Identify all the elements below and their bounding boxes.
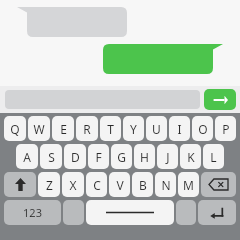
- button[interactable]: K: [180, 144, 201, 169]
- button[interactable]: Enter: [198, 200, 236, 225]
- button[interactable]: B: [132, 172, 153, 197]
- staticText: R: [83, 121, 91, 137]
- staticText: C: [93, 177, 101, 193]
- button[interactable]: [103, 44, 223, 74]
- button[interactable]: M: [178, 172, 199, 197]
- button[interactable]: T: [100, 116, 121, 141]
- staticText: A: [23, 149, 31, 165]
- staticText: Y: [130, 121, 137, 137]
- button[interactable]: Send: [204, 89, 236, 110]
- button[interactable]: Emoji: [63, 200, 84, 225]
- button[interactable]: H: [134, 144, 155, 169]
- staticText: D: [71, 149, 80, 165]
- button[interactable]: I: [169, 116, 190, 141]
- button[interactable]: R: [76, 116, 98, 141]
- button[interactable]: Shift: [4, 172, 36, 197]
- button[interactable]: 123: [4, 200, 61, 225]
- button[interactable]: S: [40, 144, 62, 169]
- staticText: G: [117, 149, 126, 165]
- staticText: P: [222, 121, 230, 137]
- staticText: K: [187, 149, 195, 165]
- button[interactable]: C: [86, 172, 107, 197]
- staticText: H: [140, 149, 149, 165]
- staticText: F: [95, 149, 102, 165]
- button[interactable]: A: [16, 144, 38, 169]
- button[interactable]: Backspace: [201, 172, 236, 197]
- button[interactable]: E: [52, 116, 74, 141]
- staticText: O: [198, 121, 208, 137]
- staticText: I: [177, 121, 182, 137]
- button[interactable]: [17, 7, 127, 37]
- staticText: M: [183, 177, 194, 193]
- button[interactable]: Q: [4, 116, 26, 141]
- staticText: T: [107, 121, 114, 137]
- staticText: B: [139, 177, 147, 193]
- button[interactable]: Space: [86, 200, 174, 225]
- staticText: J: [166, 149, 170, 165]
- button[interactable]: Y: [123, 116, 144, 141]
- button[interactable]: P: [215, 116, 236, 141]
- button[interactable]: V: [109, 172, 130, 197]
- button[interactable]: W: [28, 116, 50, 141]
- staticText: U: [152, 121, 161, 137]
- button[interactable]: N: [155, 172, 176, 197]
- staticText: E: [60, 121, 67, 137]
- staticText: L: [210, 149, 217, 165]
- staticText: V: [116, 177, 124, 193]
- button[interactable]: Language: [176, 200, 196, 225]
- staticText: X: [69, 177, 77, 193]
- button[interactable]: O: [192, 116, 213, 141]
- button[interactable]: D: [64, 144, 86, 169]
- staticText: N: [161, 177, 171, 193]
- button[interactable]: J: [157, 144, 178, 169]
- staticText: Q: [10, 121, 20, 137]
- staticText: W: [33, 121, 45, 137]
- staticText: 123: [23, 205, 42, 220]
- button[interactable]: X: [62, 172, 84, 197]
- button[interactable]: G: [111, 144, 132, 169]
- button[interactable]: L: [203, 144, 224, 169]
- staticText: Z: [46, 177, 53, 193]
- button[interactable]: F: [88, 144, 109, 169]
- staticText: S: [48, 149, 55, 165]
- button[interactable]: Z: [38, 172, 60, 197]
- button[interactable]: U: [146, 116, 167, 141]
